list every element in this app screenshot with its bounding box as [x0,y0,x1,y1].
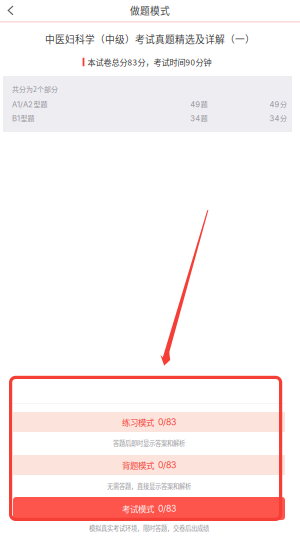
staticText: 0/83 [158,460,176,470]
staticText: 模拟真实考试环境，限时答题，交卷后出成绩 [89,523,209,533]
staticText: 型题 [20,113,34,123]
staticText: 型题 [33,99,47,109]
staticText: 0/83 [158,503,176,514]
staticText: 分 [280,113,287,123]
staticText: 0/83 [158,417,176,427]
staticText: 无需答题，直接显示答案和解析 [107,481,191,491]
button[interactable]: Back [1,0,21,21]
staticText: 练习模式 [122,416,154,428]
staticText: A1/A2 [12,100,33,109]
staticText: 34 [270,114,280,123]
staticText: 考试模式 [122,502,154,515]
button[interactable]: 背题模式 [13,455,285,475]
staticText: 做题模式 [130,3,170,18]
staticText: 共分为2个部分 [12,84,58,94]
staticText: 题 [201,113,208,123]
staticText: 49 [190,100,200,109]
staticText: 题 [201,99,208,109]
button[interactable]: 考试模式 [13,497,285,520]
staticText: 本试卷总分83分，考试时间90分钟 [87,56,211,68]
staticText: 背题模式 [122,459,154,471]
staticText: 分 [280,99,287,109]
staticText: B1 [12,114,20,123]
staticText: 中医妇科学（中级）考试真题精选及详解（一） [45,32,255,46]
button[interactable]: 练习模式 [13,412,285,432]
staticText: 34 [190,114,200,123]
staticText: 答题后即时显示答案和解析 [113,438,185,448]
staticText: 49 [270,100,280,109]
